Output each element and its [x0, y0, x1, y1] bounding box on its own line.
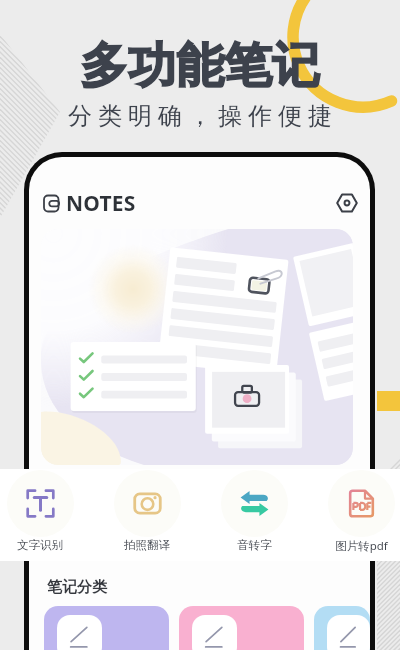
- staticText: 文字识别: [17, 538, 63, 552]
- staticText: NOTES: [66, 189, 136, 218]
- staticText: 图片转pdf: [335, 538, 388, 554]
- button[interactable]: [179, 606, 304, 650]
- staticText: 分类明确，操作便捷: [3, 101, 400, 131]
- button[interactable]: 音转字: [218, 470, 290, 552]
- button[interactable]: [314, 606, 370, 650]
- button[interactable]: 拍照翻译: [111, 470, 183, 552]
- button[interactable]: Settings: [336, 192, 358, 214]
- button[interactable]: 文字识别: [4, 470, 76, 552]
- staticText: 笔记分类: [47, 578, 107, 597]
- staticText: 多功能笔记: [0, 36, 400, 96]
- button[interactable]: [44, 606, 169, 650]
- staticText: 拍照翻译: [124, 538, 170, 552]
- staticText: 音转字: [237, 538, 272, 552]
- button[interactable]: 图片转pdf: [325, 470, 397, 554]
